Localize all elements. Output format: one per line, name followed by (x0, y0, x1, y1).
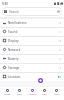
staticText: Sound (8, 30, 18, 34)
staticText: Calls (42, 93, 47, 96)
button[interactable]: Groups (28, 87, 37, 96)
button[interactable]: Sound (0, 27, 64, 36)
button[interactable]: More (52, 87, 61, 96)
button[interactable]: Location (0, 72, 64, 81)
button[interactable]: Display (0, 36, 64, 45)
button[interactable]: Search (2, 7, 62, 16)
staticText: Notifications (8, 21, 27, 25)
staticText: Battery (8, 57, 19, 61)
staticText: Groups (29, 93, 37, 96)
staticText: Storage (8, 66, 20, 70)
staticText: Search (9, 10, 19, 14)
staticText: 9:30 (2, 2, 8, 6)
staticText: Network (8, 48, 21, 52)
button[interactable]: Network (0, 45, 64, 54)
staticText: Display (8, 39, 19, 43)
button[interactable]: Notifications (0, 19, 64, 27)
staticText: Chat (17, 93, 22, 96)
button[interactable]: Calls (40, 87, 49, 96)
staticText: Home (4, 93, 11, 96)
button[interactable]: Storage (0, 63, 64, 72)
button[interactable]: Battery (0, 54, 64, 63)
button[interactable]: Chat (15, 87, 24, 96)
button[interactable]: Home (3, 87, 12, 96)
staticText: Location (8, 75, 21, 79)
button[interactable]: Compose (38, 78, 43, 83)
staticText: More (54, 93, 60, 96)
